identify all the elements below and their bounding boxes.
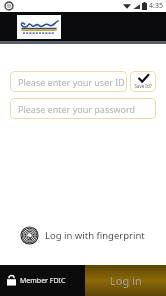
- staticText: Log in: [110, 273, 142, 288]
- button[interactable]: Log in: [85, 265, 166, 296]
- staticText: Member FDIC: [20, 276, 66, 286]
- staticText: 4:35: [149, 1, 163, 11]
- staticText: Please enter your password: [18, 103, 136, 115]
- button[interactable]: Log in with fingerprint: [0, 223, 166, 248]
- button[interactable]: Member FDIC: [0, 265, 85, 296]
- button[interactable]: Please enter your user ID: [10, 71, 127, 92]
- staticText: Save Id?: [134, 83, 152, 89]
- button[interactable]: Save ID: [130, 71, 156, 92]
- staticText: Log in with fingerprint: [45, 229, 145, 242]
- button[interactable]: Please enter your password: [10, 98, 156, 119]
- button[interactable]: Bank logo: [17, 15, 61, 39]
- staticText: Please enter your user ID: [18, 76, 125, 88]
